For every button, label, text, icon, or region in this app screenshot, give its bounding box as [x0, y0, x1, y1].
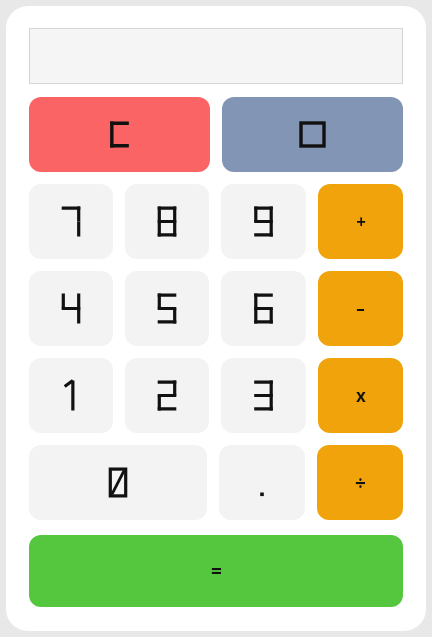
button[interactable]	[125, 271, 209, 346]
button[interactable]: Divide	[317, 445, 403, 520]
button[interactable]	[125, 184, 209, 259]
button[interactable]	[29, 445, 207, 520]
button[interactable]	[221, 271, 306, 346]
staticText: +	[356, 210, 366, 233]
button[interactable]: Multiply	[318, 358, 403, 433]
staticText: x	[356, 384, 366, 407]
button[interactable]: Display	[29, 28, 403, 84]
button[interactable]: Decimal point	[219, 445, 305, 520]
button[interactable]: Delete	[222, 97, 403, 172]
button[interactable]	[221, 358, 306, 433]
button[interactable]	[29, 358, 113, 433]
button[interactable]	[221, 184, 306, 259]
button[interactable]	[125, 358, 209, 433]
staticText: =	[211, 558, 222, 584]
button[interactable]: Equals	[29, 535, 403, 607]
button[interactable]: Clear	[29, 97, 210, 172]
staticText: –	[356, 297, 365, 320]
button[interactable]: Subtract	[318, 271, 403, 346]
button[interactable]: Add	[318, 184, 403, 259]
staticText: ÷	[355, 470, 366, 496]
button[interactable]	[29, 184, 113, 259]
button[interactable]	[29, 271, 113, 346]
